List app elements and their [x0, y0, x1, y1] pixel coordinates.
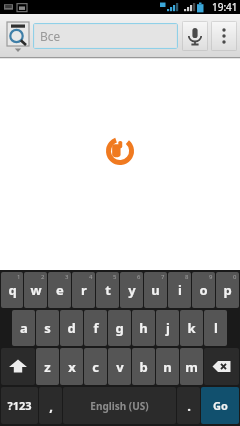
button[interactable]: l: [204, 310, 227, 346]
staticText: i: [178, 281, 182, 299]
button[interactable]: d: [60, 310, 83, 346]
button[interactable]: ?123: [1, 387, 38, 424]
staticText: 6: [137, 273, 141, 281]
button[interactable]: n: [156, 348, 179, 385]
staticText: 9: [209, 273, 213, 281]
button[interactable]: x: [60, 348, 83, 385]
staticText: z: [44, 358, 51, 376]
staticText: r: [81, 281, 87, 299]
staticText: m: [185, 358, 198, 376]
button[interactable]: English (US): [63, 387, 176, 424]
staticText: h: [139, 319, 148, 337]
button[interactable]: Все: [33, 23, 178, 49]
button[interactable]: u: [144, 272, 167, 308]
staticText: y: [128, 281, 136, 299]
button[interactable]: More options: [211, 21, 237, 51]
staticText: 2: [41, 273, 45, 281]
staticText: o: [199, 281, 208, 299]
staticText: d: [67, 319, 76, 337]
button[interactable]: Go: [201, 387, 239, 424]
button[interactable]: e: [48, 272, 71, 308]
staticText: 1: [17, 273, 21, 281]
staticText: v: [116, 358, 124, 376]
staticText: s: [44, 319, 51, 337]
staticText: n: [163, 358, 172, 376]
staticText: w: [30, 281, 42, 299]
staticText: j: [166, 319, 170, 337]
button[interactable]: w: [24, 272, 47, 308]
staticText: Go: [213, 398, 228, 413]
staticText: u: [151, 281, 160, 299]
staticText: 19:41: [212, 0, 238, 14]
staticText: 0: [233, 273, 237, 281]
button[interactable]: r: [72, 272, 95, 308]
button[interactable]: t: [96, 272, 119, 308]
staticText: l: [214, 319, 218, 337]
button[interactable]: f: [84, 310, 107, 346]
button[interactable]: k: [180, 310, 203, 346]
staticText: q: [8, 281, 17, 299]
button[interactable]: g: [108, 310, 131, 346]
button[interactable]: Shift: [1, 348, 35, 385]
staticText: ,: [49, 397, 53, 415]
button[interactable]: Search scope: [3, 16, 33, 56]
staticText: English (US): [90, 399, 149, 413]
button[interactable]: p: [216, 272, 239, 308]
button[interactable]: ,: [39, 387, 62, 424]
staticText: t: [105, 281, 111, 299]
button[interactable]: v: [108, 348, 131, 385]
button[interactable]: h: [132, 310, 155, 346]
staticText: .: [187, 397, 191, 415]
staticText: Все: [40, 28, 61, 44]
staticText: c: [92, 358, 99, 376]
staticText: p: [223, 281, 232, 299]
staticText: 8: [185, 273, 189, 281]
staticText: 4: [89, 273, 93, 281]
button[interactable]: b: [132, 348, 155, 385]
button[interactable]: i: [168, 272, 191, 308]
button[interactable]: s: [36, 310, 59, 346]
staticText: f: [93, 319, 99, 337]
staticText: 7: [161, 273, 165, 281]
button[interactable]: Backspace: [204, 348, 239, 385]
button[interactable]: o: [192, 272, 215, 308]
button[interactable]: m: [180, 348, 203, 385]
button[interactable]: z: [36, 348, 59, 385]
button[interactable]: q: [1, 272, 23, 308]
button[interactable]: .: [177, 387, 200, 424]
staticText: b: [139, 358, 148, 376]
staticText: 5: [113, 273, 117, 281]
staticText: g: [115, 319, 124, 337]
staticText: 3: [65, 273, 69, 281]
staticText: e: [56, 281, 64, 299]
button[interactable]: j: [156, 310, 179, 346]
button[interactable]: c: [84, 348, 107, 385]
button[interactable]: Voice search: [182, 21, 208, 51]
staticText: ?123: [7, 398, 32, 413]
staticText: x: [68, 358, 76, 376]
button[interactable]: y: [120, 272, 143, 308]
staticText: k: [187, 319, 196, 337]
button[interactable]: a: [12, 310, 35, 346]
staticText: a: [20, 319, 28, 337]
